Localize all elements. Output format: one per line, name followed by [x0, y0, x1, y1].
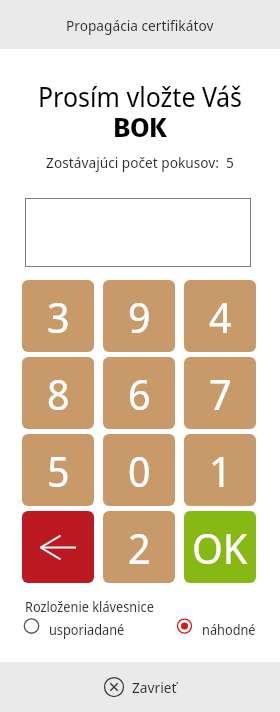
- staticText: 2: [128, 519, 151, 576]
- staticText: 1: [209, 442, 232, 499]
- button[interactable]: usporiadané: [24, 617, 125, 635]
- button[interactable]: 7: [184, 357, 256, 429]
- button[interactable]: 9: [103, 280, 175, 352]
- button[interactable]: 3: [22, 280, 94, 352]
- staticText: Prosím vložte Váš: [0, 79, 280, 115]
- staticText: náhodné: [202, 621, 256, 639]
- button[interactable]: 8: [22, 357, 94, 429]
- staticText: 8: [47, 365, 70, 422]
- button[interactable]: Backspace: [22, 511, 94, 583]
- staticText: 9: [128, 288, 151, 345]
- button[interactable]: 5: [22, 434, 94, 506]
- staticText: 0: [128, 442, 151, 499]
- staticText: Zavrieť: [132, 677, 177, 697]
- staticText: 7: [209, 365, 232, 422]
- staticText: 4: [209, 288, 232, 345]
- staticText: 5: [47, 442, 70, 499]
- staticText: usporiadané: [49, 621, 125, 639]
- staticText: OK: [192, 519, 248, 576]
- button[interactable]: [25, 198, 251, 267]
- staticText: Rozloženie klávesnice: [25, 598, 154, 616]
- button[interactable]: 6: [103, 357, 175, 429]
- button[interactable]: OK: [184, 511, 256, 583]
- staticText: BOK: [0, 111, 280, 144]
- button[interactable]: 1: [184, 434, 256, 506]
- button[interactable]: 2: [103, 511, 175, 583]
- staticText: Zostávajúci počet pokusov: 5: [0, 152, 280, 172]
- button[interactable]: 4: [184, 280, 256, 352]
- button[interactable]: náhodné: [177, 617, 256, 635]
- staticText: Propagácia certifikátov: [66, 15, 214, 35]
- button[interactable]: Zavrieť: [104, 677, 177, 697]
- staticText: 3: [47, 288, 70, 345]
- button[interactable]: 0: [103, 434, 175, 506]
- staticText: 6: [128, 365, 151, 422]
